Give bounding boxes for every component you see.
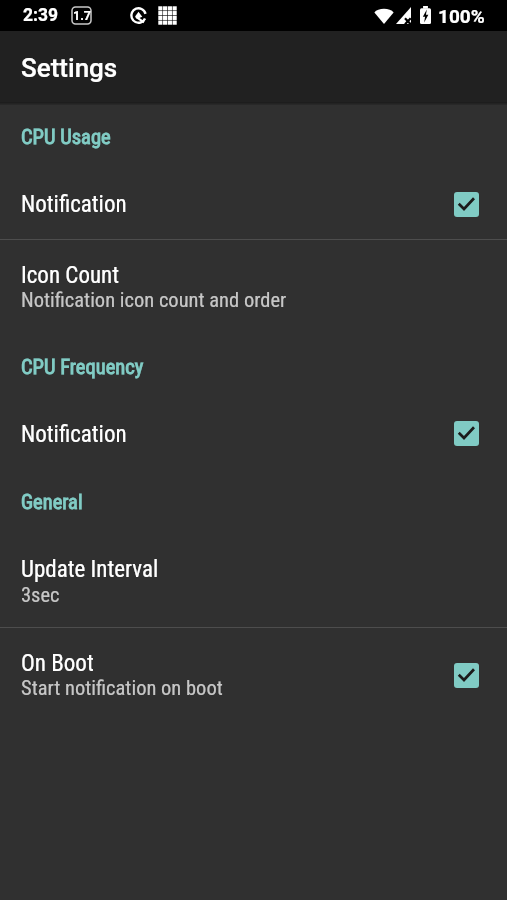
staticText: Settings xyxy=(21,53,118,83)
staticText: 100% xyxy=(438,5,485,27)
staticText: 2:39 xyxy=(23,5,59,26)
staticText: Notification icon count and order xyxy=(21,288,287,312)
other: No mobile signal xyxy=(396,7,411,24)
staticText: On Boot xyxy=(21,650,94,677)
staticText: Icon Count xyxy=(21,262,119,289)
button[interactable]: Notification xyxy=(0,397,507,469)
staticText: Notification xyxy=(21,191,127,218)
staticText: General xyxy=(21,490,83,514)
staticText: CPU Frequency xyxy=(21,355,144,379)
staticText: 3sec xyxy=(21,583,60,607)
other: Notification xyxy=(130,7,147,24)
other: CPU load 1.7 xyxy=(72,7,91,24)
other: Notification toggle xyxy=(454,192,479,217)
staticText: Notification xyxy=(21,421,127,448)
button[interactable]: Update Interval xyxy=(0,532,507,627)
other: On Boot toggle xyxy=(454,663,479,688)
other: CPU frequency grid xyxy=(158,6,177,25)
button[interactable]: On Boot xyxy=(0,628,507,708)
other: Wi-Fi xyxy=(374,7,394,24)
staticText: Update Interval xyxy=(21,556,159,583)
staticText: 1.7 xyxy=(73,8,91,23)
other: Notification toggle xyxy=(454,421,479,446)
staticText: CPU Usage xyxy=(21,125,111,149)
button[interactable]: Icon Count xyxy=(0,240,507,320)
other: Battery charging xyxy=(420,6,431,24)
button[interactable]: Notification xyxy=(0,167,507,239)
staticText: Start notification on boot xyxy=(21,676,223,700)
